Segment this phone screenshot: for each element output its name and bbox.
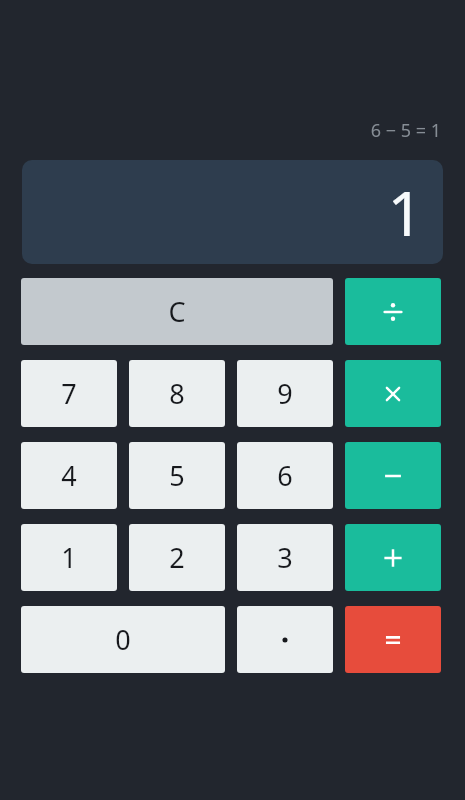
staticText: 5 — [169, 457, 185, 494]
button[interactable]: 6 — [237, 442, 333, 509]
staticText: 1 — [61, 539, 77, 576]
button[interactable]: 9 — [237, 360, 333, 427]
button[interactable]: 3 — [237, 524, 333, 591]
staticText: 1 — [387, 170, 423, 254]
staticText: 6 − 5 = 1 — [370, 118, 441, 143]
button[interactable]: 0 — [21, 606, 225, 673]
button[interactable]: Minus — [345, 442, 441, 509]
button[interactable]: 2 — [129, 524, 225, 591]
button[interactable]: Equals — [345, 606, 441, 673]
button[interactable]: C — [21, 278, 333, 345]
staticText: 9 — [277, 375, 293, 412]
button[interactable]: 4 — [21, 442, 117, 509]
staticText: 3 — [277, 539, 293, 576]
button[interactable]: 1 — [22, 160, 443, 264]
staticText: 0 — [115, 621, 131, 658]
staticText: 6 — [277, 457, 293, 494]
staticText: 4 — [61, 457, 77, 494]
button[interactable]: Plus — [345, 524, 441, 591]
button[interactable]: Divide — [345, 278, 441, 345]
button[interactable]: 1 — [21, 524, 117, 591]
button[interactable]: 7 — [21, 360, 117, 427]
staticText: 7 — [61, 375, 77, 412]
button[interactable]: 5 — [129, 442, 225, 509]
staticText: 2 — [169, 539, 185, 576]
button[interactable]: Decimal point — [237, 606, 333, 673]
staticText: C — [168, 293, 186, 330]
button[interactable]: 8 — [129, 360, 225, 427]
button[interactable]: Multiply — [345, 360, 441, 427]
staticText: 8 — [169, 375, 185, 412]
